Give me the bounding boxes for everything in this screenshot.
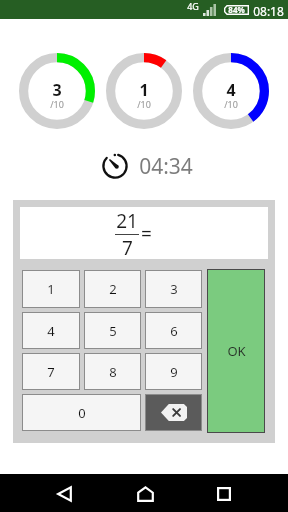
button[interactable]: 6 [145, 312, 202, 349]
button[interactable]: 9 [145, 353, 202, 390]
staticText: 3 [170, 280, 178, 298]
button[interactable]: 7 [22, 353, 80, 390]
button[interactable]: OK [207, 269, 265, 433]
button[interactable]: 3 [145, 270, 202, 308]
button[interactable]: 0 [22, 394, 141, 431]
staticText: 21 [116, 208, 138, 234]
staticText: 4 [47, 322, 55, 340]
staticText: 1 [139, 79, 149, 101]
button[interactable]: 1 [22, 270, 80, 308]
staticText: 2 [109, 280, 117, 298]
staticText: 7 [47, 363, 55, 381]
staticText: 3 [52, 79, 62, 101]
button[interactable]: 5 [84, 312, 141, 349]
staticText: 4G [187, 0, 199, 12]
staticText: 0 [78, 404, 86, 422]
staticText: 8 [109, 363, 117, 381]
staticText: 04:34 [139, 152, 193, 181]
staticText: 5 [109, 322, 117, 340]
staticText: 84% [228, 4, 245, 15]
button[interactable]: 8 [84, 353, 141, 390]
staticText: /10 [50, 98, 64, 110]
button[interactable]: 4 [22, 312, 80, 349]
button[interactable]: Back [41, 474, 85, 512]
button[interactable]: 2 [84, 270, 141, 308]
button[interactable]: Recent apps [202, 474, 246, 512]
staticText: 7 [122, 235, 133, 260]
staticText: OK [227, 342, 246, 360]
button[interactable]: Backspace [145, 394, 202, 431]
staticText: /10 [137, 98, 151, 110]
staticText: 4 [226, 79, 236, 101]
button[interactable]: Home [122, 474, 166, 512]
staticText: = [141, 221, 152, 247]
staticText: 9 [170, 363, 178, 381]
staticText: 1 [47, 280, 55, 298]
staticText: /10 [224, 98, 238, 110]
staticText: 08:18 [253, 3, 284, 19]
staticText: 6 [170, 322, 178, 340]
